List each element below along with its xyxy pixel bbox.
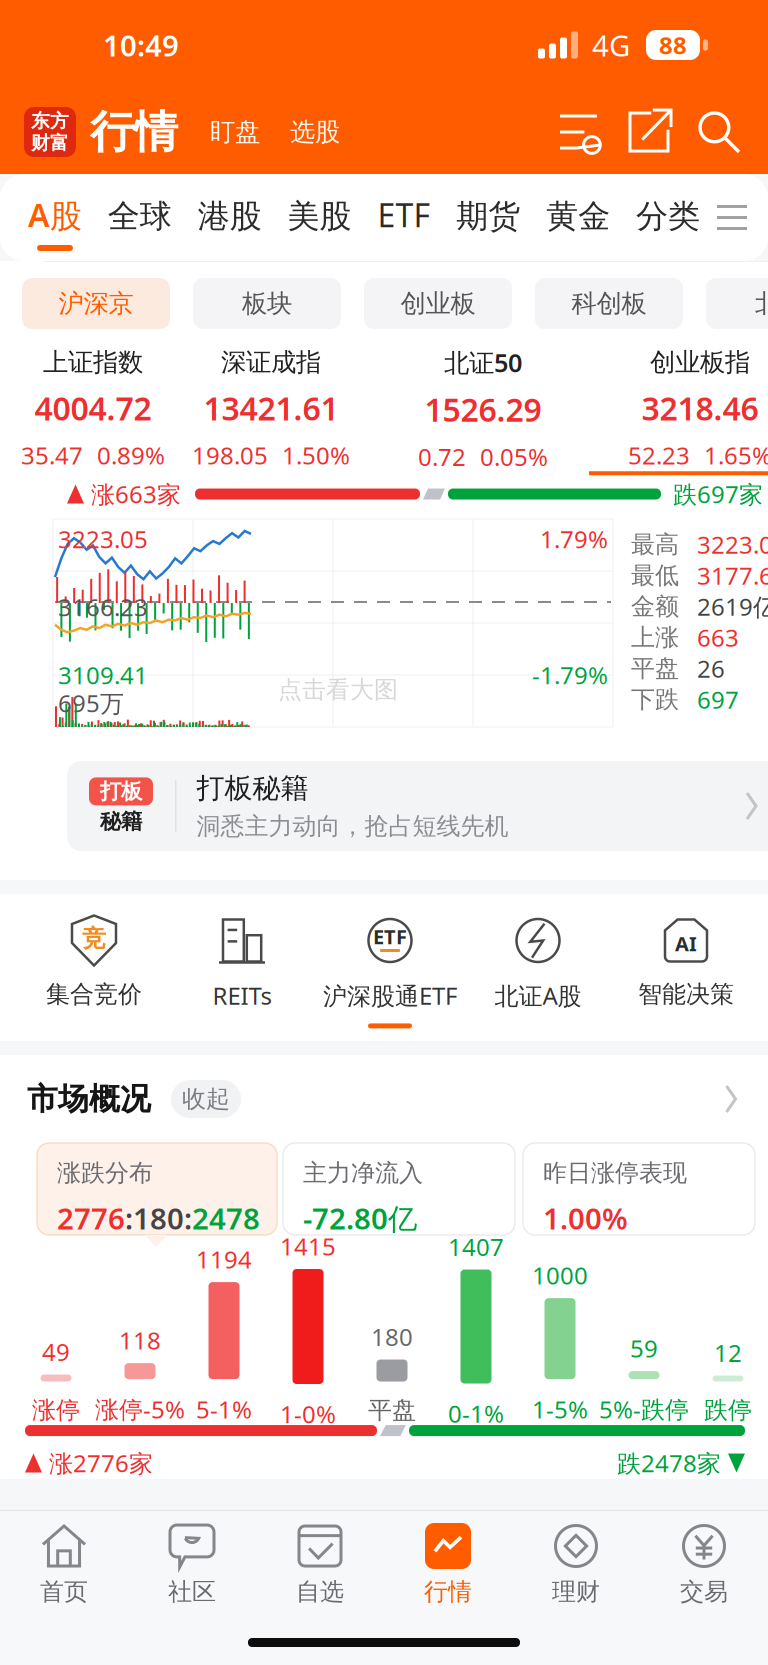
- button[interactable]: 北证: [706, 278, 768, 329]
- staticText: ETF: [373, 923, 407, 950]
- staticText: 沪深京: [58, 288, 133, 319]
- staticText: 理财: [552, 1577, 600, 1606]
- button[interactable]: 行情: [384, 1511, 512, 1611]
- staticText: 0.89%: [97, 439, 165, 471]
- button[interactable]: 科创板: [535, 278, 683, 329]
- staticText: -1.79%: [532, 659, 608, 691]
- button[interactable]: REITs: [168, 887, 316, 1047]
- staticText: 35.47: [21, 439, 83, 471]
- staticText: 1.00%: [543, 1199, 628, 1238]
- staticText: 2776: [57, 1199, 125, 1238]
- staticText: 打板秘籍: [196, 771, 308, 805]
- staticText: 行情: [424, 1577, 472, 1606]
- button[interactable]: 港股: [198, 174, 262, 261]
- button[interactable]: 深证成指: [165, 345, 377, 469]
- staticText: 东方: [31, 110, 69, 132]
- button[interactable]: 黄金: [546, 174, 610, 261]
- button[interactable]: 北证50: [377, 345, 589, 469]
- button[interactable]: 全部分类: [700, 174, 764, 261]
- staticText: 697: [697, 684, 739, 715]
- button[interactable]: 主力净流入: [283, 1143, 515, 1235]
- staticText: 1000: [532, 1259, 588, 1291]
- staticText: 财富: [31, 131, 69, 154]
- staticText: 180: [371, 1321, 413, 1352]
- staticText: 集合竞价: [46, 979, 142, 1009]
- button[interactable]: 更多: [701, 1074, 761, 1124]
- staticText: 最高: [631, 530, 679, 559]
- button[interactable]: 竞: [20, 887, 168, 1047]
- staticText: 科创板: [571, 288, 646, 319]
- staticText: 涨663家: [91, 478, 181, 510]
- staticText: 663: [697, 622, 739, 653]
- staticText: 695万: [58, 687, 124, 719]
- staticText: REITs: [212, 979, 271, 1011]
- staticText: 交易: [680, 1577, 728, 1606]
- staticText: 涨2776家: [49, 1447, 153, 1479]
- button[interactable]: 沪深京: [22, 278, 170, 329]
- staticText: 1526.29: [424, 388, 541, 431]
- staticText: 跌2478家: [617, 1447, 721, 1479]
- staticText: 1194: [196, 1243, 252, 1275]
- button[interactable]: 上证指数: [43, 345, 165, 469]
- staticText: 平盘: [631, 654, 679, 683]
- button[interactable]: 分类: [636, 174, 700, 261]
- staticText: AI: [675, 930, 697, 957]
- staticText: 3218.46: [641, 387, 758, 429]
- staticText: 下跌: [631, 685, 679, 714]
- button[interactable]: 创业板指: [589, 345, 768, 469]
- button[interactable]: 创业板: [364, 278, 512, 329]
- button[interactable]: 板块: [193, 278, 341, 329]
- staticText: 行情: [90, 105, 178, 159]
- button[interactable]: 搜索: [684, 103, 754, 161]
- button[interactable]: 理财: [512, 1511, 640, 1611]
- button[interactable]: 收起: [171, 1080, 241, 1118]
- button[interactable]: 自选: [256, 1511, 384, 1611]
- staticText: 港股: [198, 197, 262, 236]
- staticText: 点击看大图: [278, 675, 398, 704]
- button[interactable]: 筛选: [548, 103, 614, 161]
- staticText: 首页: [40, 1577, 88, 1606]
- staticText: 盯盘: [210, 116, 260, 147]
- staticText: 26: [697, 653, 725, 684]
- button[interactable]: 涨跌分布: [37, 1143, 277, 1235]
- button[interactable]: 北证A股: [464, 887, 612, 1047]
- staticText: 跌停: [704, 1395, 752, 1425]
- button[interactable]: 分享: [614, 103, 684, 161]
- button[interactable]: ETF: [377, 174, 430, 261]
- button[interactable]: 社区: [128, 1511, 256, 1611]
- staticText: 59: [630, 1332, 658, 1364]
- staticText: 美股: [288, 197, 352, 236]
- staticText: 沪深股通ETF: [323, 979, 457, 1011]
- staticText: 1.79%: [540, 523, 608, 555]
- staticText: 创业板: [400, 288, 475, 319]
- staticText: 市场概况: [27, 1080, 151, 1118]
- staticText: 选股: [290, 116, 340, 147]
- button[interactable]: ETF: [316, 887, 464, 1047]
- button[interactable]: 交易: [640, 1511, 768, 1611]
- staticText: 0.05%: [480, 441, 548, 472]
- button[interactable]: 全球: [108, 174, 172, 261]
- button[interactable]: AI: [612, 887, 760, 1047]
- staticText: ETF: [377, 193, 430, 236]
- button[interactable]: 首页: [0, 1511, 128, 1611]
- staticText: 昨日涨停表现: [543, 1158, 687, 1188]
- staticText: 118: [119, 1324, 161, 1356]
- staticText: 涨跌分布: [57, 1158, 153, 1188]
- button[interactable]: 期货: [456, 174, 520, 261]
- staticText: 4G: [592, 25, 630, 64]
- staticText: 金额: [631, 592, 679, 621]
- staticText: 1-0%: [280, 1398, 336, 1430]
- button[interactable]: 美股: [288, 174, 352, 261]
- staticText: 平盘: [368, 1395, 416, 1425]
- staticText: 社区: [168, 1577, 216, 1606]
- staticText: 4004.72: [34, 387, 151, 429]
- staticText: 秘籍: [100, 808, 142, 835]
- staticText: -72.80亿: [303, 1199, 417, 1238]
- staticText: 北证A股: [494, 979, 581, 1011]
- button[interactable]: 昨日涨停表现: [523, 1143, 755, 1235]
- staticText: 主力净流入: [303, 1158, 423, 1188]
- button[interactable]: A股: [28, 174, 82, 261]
- staticText: 上涨: [631, 623, 679, 652]
- staticText: 3109.41: [58, 659, 148, 691]
- button[interactable]: 打板: [43, 761, 768, 851]
